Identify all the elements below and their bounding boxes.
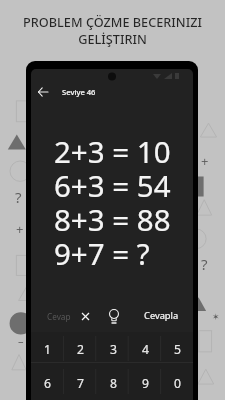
staticText: 8 <box>110 375 117 392</box>
button[interactable]: 1 <box>31 332 64 366</box>
button[interactable]: 9 <box>129 366 161 400</box>
button[interactable]: 2 <box>64 332 97 366</box>
staticText: ? <box>201 254 208 274</box>
staticText: 5 <box>174 341 181 358</box>
button[interactable]: 6 <box>31 366 64 400</box>
staticText: + <box>16 220 24 238</box>
staticText: 1 <box>44 341 51 358</box>
staticText: Seviye 46 <box>62 87 96 97</box>
staticText: 3 <box>110 341 117 358</box>
button[interactable]: 7 <box>64 366 97 400</box>
staticText: 0 <box>174 375 181 392</box>
staticText: Cevap <box>47 311 71 322</box>
staticText: Cevapla <box>144 309 179 322</box>
button[interactable]: Clear <box>75 306 96 327</box>
button[interactable]: 4 <box>129 332 161 366</box>
staticText: – <box>18 333 24 348</box>
button[interactable]: Hint <box>103 305 125 327</box>
button[interactable]: Cevapla <box>144 305 179 325</box>
button[interactable]: Back <box>32 81 54 103</box>
button[interactable]: 8 <box>97 366 129 400</box>
staticText: PROBLEM ÇÖZME BECERINIZI GELİŞTIRIN <box>23 13 202 48</box>
button[interactable]: 5 <box>161 332 193 366</box>
button[interactable]: Cevap <box>47 307 81 325</box>
staticText: 9 <box>142 375 149 392</box>
staticText: 2 <box>77 341 84 358</box>
staticText: 6 <box>44 375 51 392</box>
button[interactable]: 3 <box>97 332 129 366</box>
staticText: + <box>201 152 209 170</box>
staticText: 2+3 = 10 6+3 = 54 8+3 = 88 9+7 = ? <box>54 131 193 273</box>
staticText: 4 <box>142 341 149 358</box>
button[interactable]: 0 <box>161 366 193 400</box>
staticText: ✶ <box>212 312 220 322</box>
staticText: ? <box>15 187 22 207</box>
staticText: 7 <box>77 375 84 392</box>
